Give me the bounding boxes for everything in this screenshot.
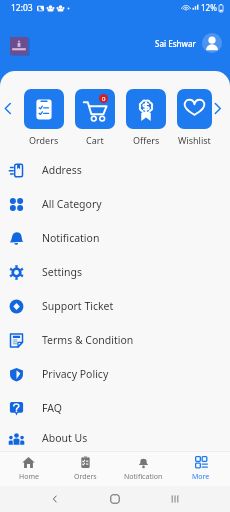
button[interactable]: Cart: [75, 89, 115, 129]
staticText: 0: [102, 95, 106, 103]
button[interactable]: Address: [0, 153, 230, 187]
staticText: Terms & Condition: [42, 333, 134, 347]
staticText: Support Ticket: [42, 299, 114, 313]
button[interactable]: Support Ticket: [0, 289, 230, 323]
staticText: Cart: [86, 134, 104, 146]
button[interactable]: Settings: [0, 255, 230, 289]
staticText: FAQ: [42, 401, 62, 415]
staticText: Notification: [42, 231, 100, 245]
staticText: All Category: [42, 197, 102, 211]
staticText: Wishlist: [178, 134, 211, 146]
button[interactable]: Terms & Condition: [0, 323, 230, 357]
button[interactable]: Orders: [24, 89, 64, 129]
button[interactable]: Orders: [57, 451, 114, 486]
staticText: Notification: [124, 472, 163, 482]
button[interactable]: Notification: [114, 451, 172, 486]
button[interactable]: Previous: [0, 89, 22, 128]
button[interactable]: About Us: [0, 425, 230, 451]
staticText: 12:03: [11, 2, 33, 14]
button[interactable]: All Category: [0, 187, 230, 221]
staticText: More: [192, 472, 210, 482]
button[interactable]: Offers: [126, 89, 166, 129]
button[interactable]: Notification: [0, 221, 230, 255]
staticText: 12%: [201, 2, 217, 13]
button[interactable]: Next: [212, 89, 230, 128]
staticText: Address: [42, 163, 82, 177]
staticText: About Us: [42, 431, 88, 445]
button[interactable]: Profile: [202, 33, 222, 53]
button[interactable]: More: [172, 451, 230, 486]
button[interactable]: Home: [0, 451, 57, 486]
button[interactable]: Wishlist: [177, 89, 212, 129]
button[interactable]: Privacy Policy: [0, 357, 230, 391]
button[interactable]: Logo: [10, 37, 28, 55]
staticText: Home: [19, 472, 39, 482]
staticText: Privacy Policy: [42, 367, 109, 381]
staticText: Offers: [133, 134, 160, 146]
staticText: Orders: [74, 472, 97, 482]
button[interactable]: FAQ: [0, 391, 230, 425]
staticText: Sai Eshwar: [155, 38, 196, 49]
staticText: Settings: [42, 265, 82, 279]
staticText: Orders: [29, 134, 59, 146]
